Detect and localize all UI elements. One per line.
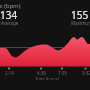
staticText: 9:32 bbox=[82, 70, 90, 76]
staticText: e (bpm) bbox=[0, 2, 21, 10]
staticText: 2:14 bbox=[5, 70, 14, 76]
staticText: 7:05 bbox=[58, 70, 67, 76]
staticText: 155 bbox=[71, 8, 89, 22]
staticText: Time (h:m:s) bbox=[2, 76, 90, 82]
staticText: Average bbox=[1, 20, 19, 26]
staticText: 4:38 bbox=[37, 70, 46, 76]
staticText: 134 bbox=[0, 8, 18, 22]
staticText: Maximum bbox=[71, 20, 90, 26]
